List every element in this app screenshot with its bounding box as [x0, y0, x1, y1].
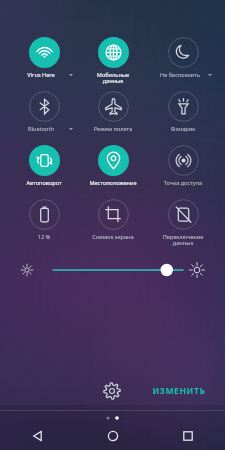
staticText: Точка доступа	[150, 179, 216, 187]
staticText: Снимок экрана	[80, 233, 146, 241]
staticText: Фонарик	[150, 125, 216, 133]
button[interactable]: Фонарик	[148, 91, 217, 143]
staticText: Bluetooth	[15, 125, 67, 133]
button[interactable]: Back	[0, 421, 75, 450]
staticText: ИЗМЕНИТЬ	[148, 385, 210, 397]
button[interactable]: Settings	[100, 379, 124, 403]
button[interactable]: Снимок экрана	[78, 199, 147, 251]
button[interactable]: Brightness	[18, 256, 207, 284]
button[interactable]: Точка доступа	[148, 145, 217, 197]
button[interactable]: Не беспокоить	[148, 37, 217, 89]
button[interactable]: Переключение данных	[148, 199, 217, 251]
button[interactable]: Мобильные данные	[78, 37, 147, 89]
staticText: Режим полета	[80, 125, 146, 133]
button[interactable]: 12 %	[9, 199, 78, 251]
staticText: Мобильные данные	[80, 71, 146, 85]
button[interactable]: ИЗМЕНИТЬ	[148, 381, 210, 401]
staticText: Не беспокоить	[154, 71, 206, 79]
staticText: Virus Here	[15, 71, 67, 79]
button[interactable]: Местоположение	[78, 145, 147, 197]
button[interactable]: Virus Here	[9, 37, 78, 89]
button[interactable]: Автоповорот	[9, 145, 78, 197]
button[interactable]: Режим полета	[78, 91, 147, 143]
button[interactable]: Home	[75, 421, 150, 450]
button[interactable]: Bluetooth	[9, 91, 78, 143]
staticText: 12 %	[11, 233, 77, 241]
staticText: Переключение данных	[150, 233, 216, 247]
button[interactable]: Recents	[150, 421, 225, 450]
staticText: Местоположение	[80, 179, 146, 187]
staticText: Автоповорот	[11, 179, 77, 187]
